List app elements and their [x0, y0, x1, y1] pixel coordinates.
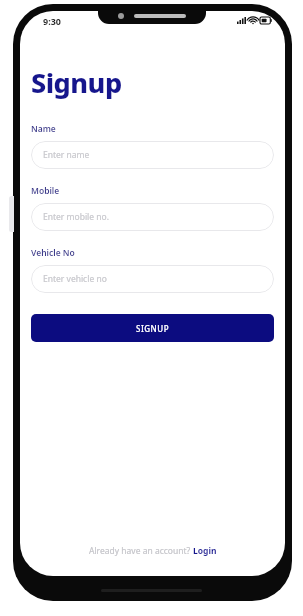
- staticText: Vehicle No: [31, 247, 75, 259]
- button[interactable]: SIGNUP: [31, 314, 274, 342]
- button[interactable]: Enter name: [31, 141, 274, 169]
- staticText: SIGNUP: [136, 323, 170, 334]
- staticText: Enter name: [43, 149, 90, 161]
- staticText: Already have an account?: [89, 545, 193, 557]
- staticText: 9:30: [43, 15, 61, 27]
- staticText: Enter mobile no.: [43, 211, 109, 223]
- staticText: Login: [193, 545, 217, 557]
- button[interactable]: Already have an account?: [31, 545, 274, 576]
- staticText: Name: [31, 123, 56, 135]
- button[interactable]: Enter mobile no.: [31, 203, 274, 231]
- staticText: Signup: [31, 64, 122, 101]
- staticText: Mobile: [31, 185, 60, 197]
- staticText: Enter vehicle no: [43, 273, 107, 285]
- button[interactable]: Enter vehicle no: [31, 265, 274, 293]
